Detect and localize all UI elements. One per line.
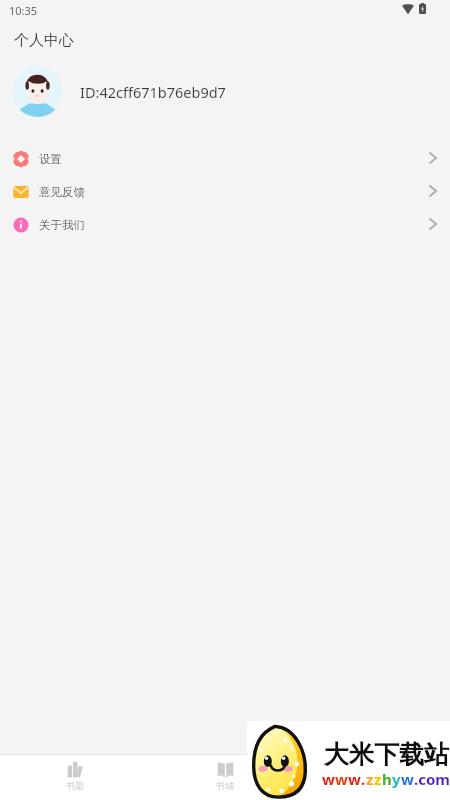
staticText: .com [414, 769, 450, 789]
button[interactable]: 书城 [150, 755, 300, 800]
button[interactable]: 我的 [300, 755, 450, 800]
staticText: z [374, 769, 382, 789]
staticText: 设置 [39, 152, 62, 166]
staticText: 大米下载站 [324, 739, 449, 770]
staticText: 个人中心 [14, 31, 74, 50]
staticText: . [361, 769, 366, 789]
staticText: h [382, 769, 392, 789]
staticText: 10:35 [9, 3, 38, 18]
other: Battery charging [419, 3, 426, 14]
button[interactable]: 设置 [0, 142, 450, 175]
staticText: 意见反馈 [39, 185, 85, 199]
staticText: 书城 [216, 780, 234, 791]
staticText: 我的 [366, 780, 384, 791]
staticText: 书架 [66, 780, 84, 791]
staticText: w [322, 769, 335, 789]
staticText: w [348, 769, 361, 789]
button[interactable]: 关于我们 [0, 208, 450, 241]
other: Wi-Fi signal [402, 4, 414, 14]
button[interactable]: User avatar [0, 56, 450, 127]
staticText: y [392, 769, 401, 789]
staticText: z [366, 769, 374, 789]
staticText: w [335, 769, 348, 789]
button[interactable]: 书架 [0, 755, 150, 800]
button[interactable]: 意见反馈 [0, 175, 450, 208]
staticText: w [401, 769, 414, 789]
staticText: ID:42cff671b76eb9d7 [80, 82, 226, 102]
other: User avatar [12, 66, 63, 117]
staticText: 关于我们 [39, 218, 85, 232]
